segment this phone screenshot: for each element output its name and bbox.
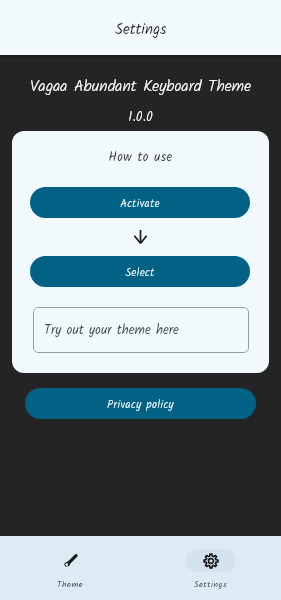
- button[interactable]: Try out your theme here: [33, 307, 249, 353]
- button[interactable]: Settings: [140, 536, 281, 600]
- button[interactable]: Privacy policy: [25, 388, 256, 419]
- staticText: 1.0.0: [0, 106, 281, 128]
- other: Theme: [63, 553, 78, 568]
- button[interactable]: Theme: [0, 536, 140, 600]
- staticText: Try out your theme here: [44, 320, 179, 341]
- staticText: Select: [125, 264, 155, 282]
- button[interactable]: Select: [30, 256, 250, 287]
- staticText: Settings: [194, 578, 228, 592]
- button[interactable]: Activate: [30, 187, 250, 218]
- staticText: Activate: [120, 195, 160, 213]
- staticText: Privacy policy: [107, 396, 174, 414]
- staticText: Settings: [115, 18, 167, 42]
- staticText: How to use: [12, 148, 269, 168]
- staticText: Vagaa Abundant Keyboard Theme: [0, 74, 281, 100]
- staticText: Theme: [57, 578, 84, 592]
- other: Settings: [204, 554, 218, 568]
